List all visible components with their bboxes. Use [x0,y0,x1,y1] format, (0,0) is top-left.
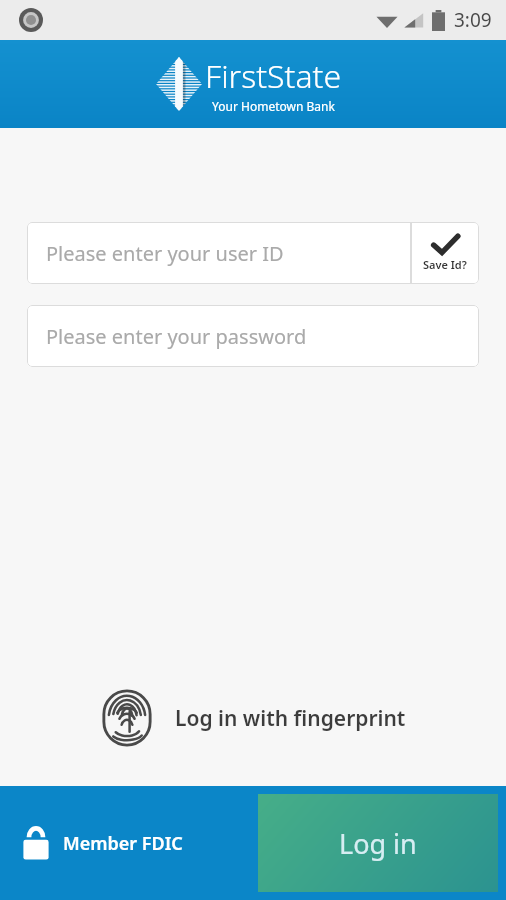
staticText: Please enter your user ID [46,240,284,267]
button[interactable]: Please enter your password [27,305,479,367]
button[interactable]: Please enter your user ID [27,222,411,284]
staticText: Your Hometown Bank [212,98,335,114]
staticText: Log in [339,825,417,862]
staticText: Save Id? [423,257,467,272]
button[interactable]: Save Id [411,222,479,284]
staticText: Member FDIC [63,831,183,856]
staticText: Please enter your password [46,323,307,350]
button[interactable]: Log in [258,794,498,892]
staticText: Log in with fingerprint [175,704,406,733]
button[interactable]: Member FDIC [0,816,197,871]
staticText: FirstState [205,54,342,98]
staticText: 3:09 [454,7,492,33]
button[interactable]: Log in with fingerprint [0,682,506,754]
